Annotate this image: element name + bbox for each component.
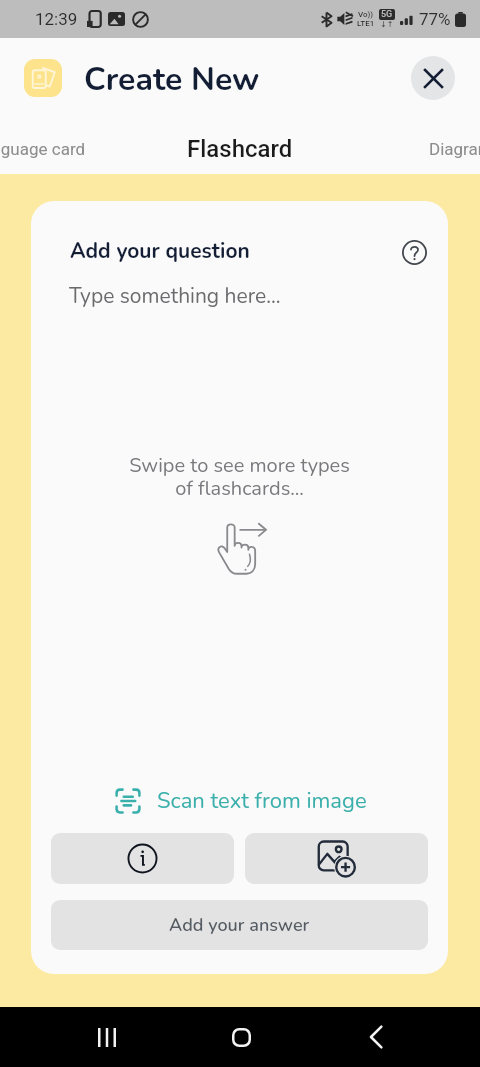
staticText: Add your question: [70, 237, 250, 266]
button[interactable]: Recent apps: [76, 1007, 137, 1067]
staticText: ↓↑: [380, 20, 394, 29]
staticText: Add your answer: [169, 913, 310, 938]
button[interactable]: Help: [400, 238, 428, 266]
button[interactable]: Home: [211, 1007, 272, 1067]
staticText: Create New: [84, 58, 260, 102]
button[interactable]: Close: [411, 56, 455, 100]
button[interactable]: Add image: [245, 833, 428, 884]
staticText: 5G: [381, 9, 393, 20]
staticText: Swipe to see more types of flashcards...: [129, 452, 350, 502]
button[interactable]: Back: [345, 1007, 406, 1067]
staticText: 77%: [419, 9, 451, 29]
button[interactable]: Flashcard: [180, 118, 300, 174]
button[interactable]: Information: [51, 833, 234, 884]
button[interactable]: Diagram: [416, 118, 480, 174]
staticText: Language card: [0, 139, 86, 159]
staticText: Scan text from image: [157, 786, 367, 816]
button[interactable]: Scan text from image: [31, 778, 448, 824]
button[interactable]: Add your answer: [51, 900, 428, 950]
staticText: Flashcard: [187, 135, 293, 163]
staticText: Vo)): [358, 10, 374, 19]
staticText: 12:39: [35, 9, 78, 29]
button[interactable]: Language card: [0, 118, 86, 174]
staticText: Diagram: [429, 139, 480, 159]
button[interactable]: Flashcards: [24, 59, 62, 97]
staticText: LTE1: [357, 19, 375, 28]
staticText: Type something here...: [69, 282, 281, 311]
